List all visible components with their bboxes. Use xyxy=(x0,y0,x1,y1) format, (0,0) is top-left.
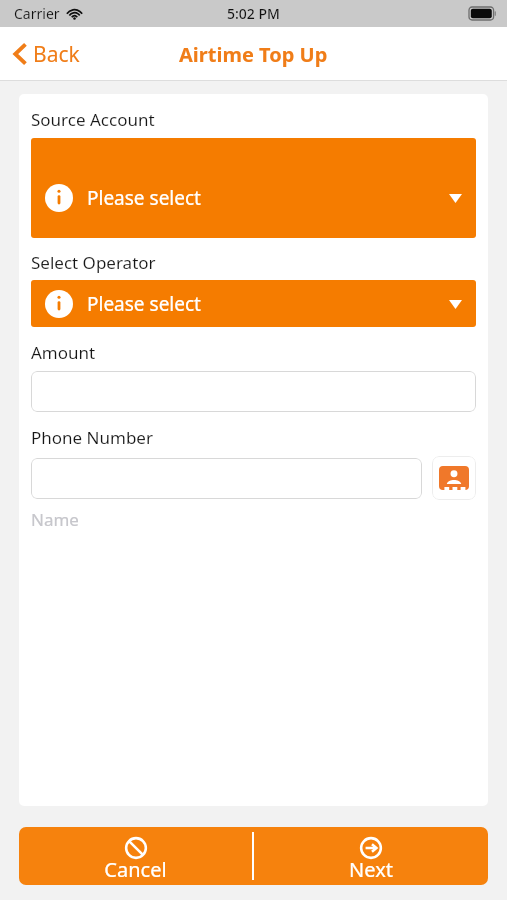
button[interactable]: Next xyxy=(254,827,488,885)
button[interactable] xyxy=(31,371,476,412)
button[interactable]: Please select xyxy=(31,280,476,327)
staticText: Name xyxy=(31,508,79,531)
staticText: Airtime Top Up xyxy=(179,41,328,68)
button[interactable] xyxy=(31,458,422,499)
button[interactable]: Please select xyxy=(31,138,476,238)
staticText: Amount xyxy=(31,341,96,364)
staticText: Carrier xyxy=(14,4,60,23)
staticText: Source Account xyxy=(31,108,155,131)
staticText: Please select xyxy=(87,291,201,317)
staticText: Select Operator xyxy=(31,251,156,274)
staticText: Next xyxy=(349,856,393,883)
button[interactable]: Choose contact xyxy=(432,456,476,500)
staticText: Phone Number xyxy=(31,426,153,449)
staticText: Please select xyxy=(87,185,201,211)
staticText: Back xyxy=(33,40,80,69)
button[interactable]: Back xyxy=(0,27,94,81)
staticText: 5:02 PM xyxy=(227,4,280,23)
staticText: Cancel xyxy=(104,856,167,883)
button[interactable]: Cancel xyxy=(19,827,252,885)
